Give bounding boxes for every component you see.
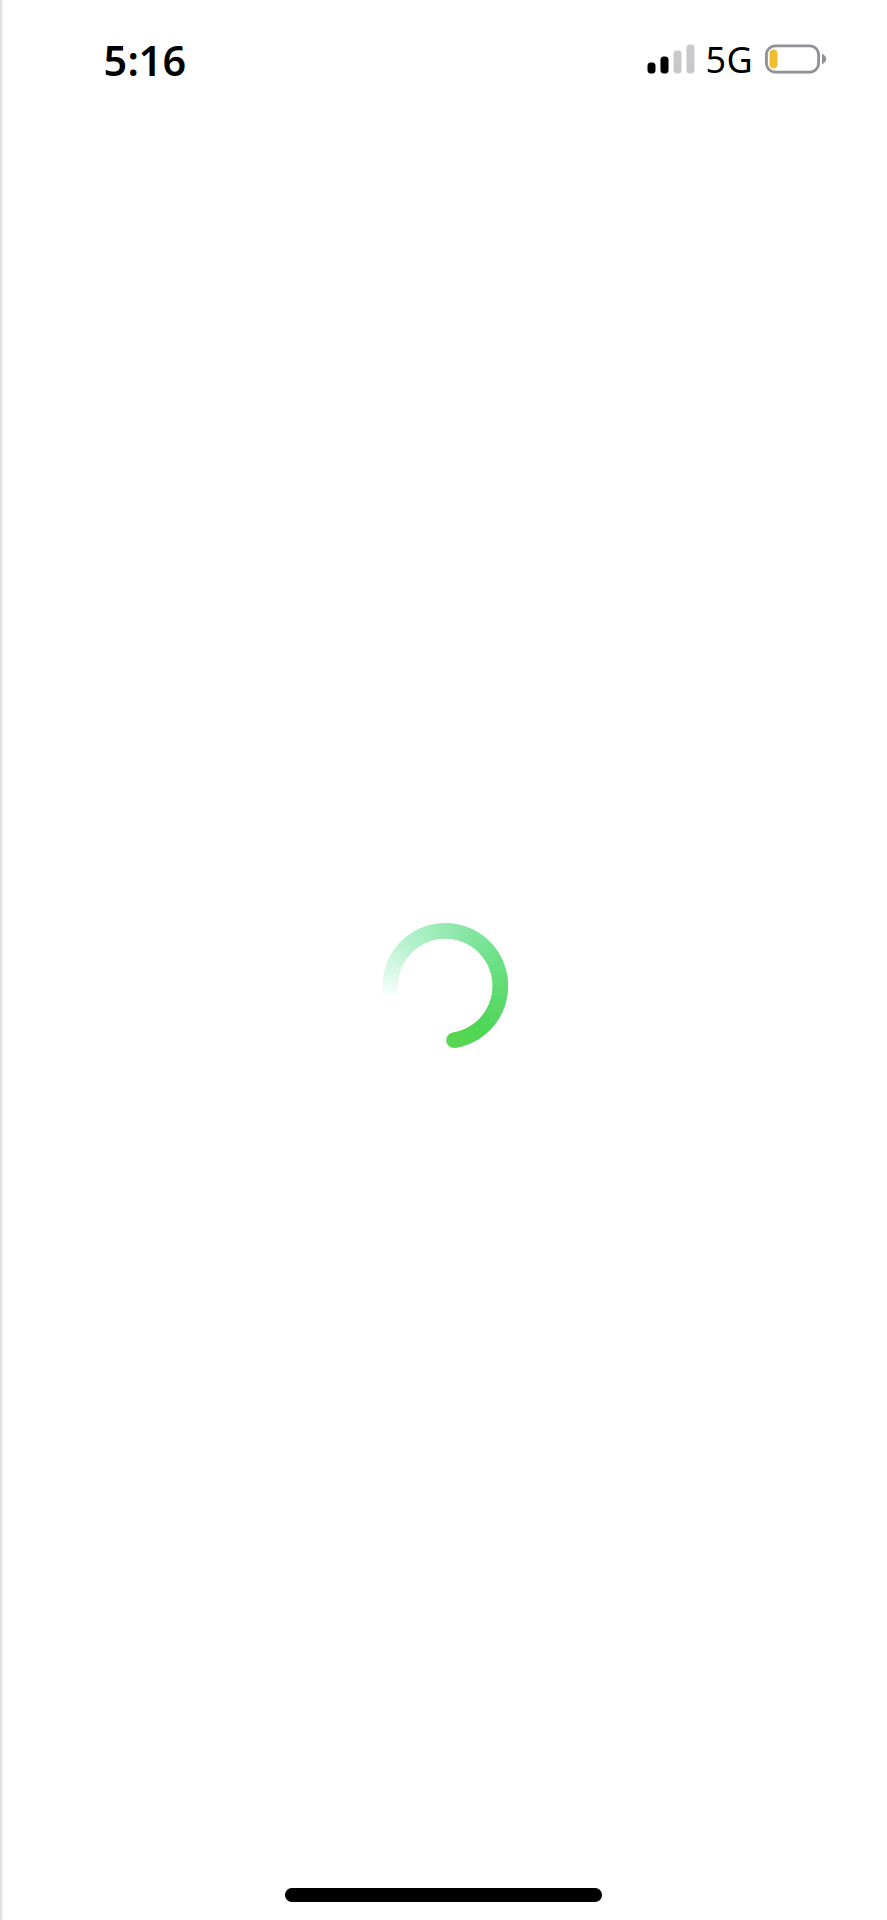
staticText: 5G — [705, 35, 752, 83]
staticText: 5:16 — [103, 33, 186, 87]
